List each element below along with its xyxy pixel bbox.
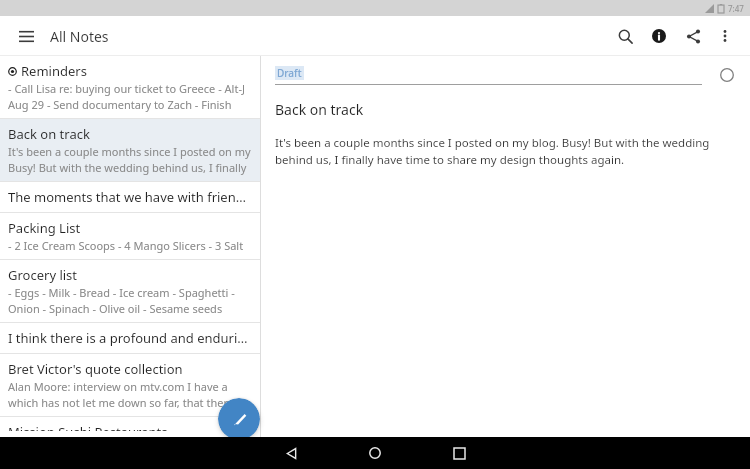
button[interactable]: Create new note	[218, 398, 260, 440]
button[interactable]: Mission Sushi Restaurants	[0, 417, 260, 437]
staticText: Onion - Spinach - Olive oil - Sesame see…	[8, 301, 223, 316]
staticText: Mission Sushi Restaurants	[8, 423, 168, 431]
staticText: - 2 Ice Cream Scoops - 4 Mango Slicers -…	[8, 238, 252, 253]
staticText: Alan Moore: interview on mtv.com I have …	[8, 379, 252, 394]
staticText: Back on track	[8, 125, 90, 143]
button[interactable]: Info	[642, 19, 676, 53]
button[interactable]: I think there is a profound and enduring…	[0, 323, 260, 353]
button[interactable]: Reminders	[0, 56, 260, 118]
staticText: - Call Lisa re: buying our ticket to Gre…	[8, 81, 252, 96]
button[interactable]: Packing List	[0, 213, 260, 259]
button[interactable]: Draft	[275, 66, 304, 80]
button[interactable]: Open navigation drawer	[10, 20, 42, 52]
staticText: Back on track	[275, 100, 364, 119]
staticText: I think there is a profound and enduring…	[8, 329, 252, 347]
staticText: Bret Victor's quote collection	[8, 360, 183, 378]
button[interactable]: Recent apps	[436, 437, 482, 469]
button[interactable]: Mark note	[716, 64, 738, 86]
button[interactable]: More options	[710, 21, 740, 51]
button[interactable]: Back on track	[0, 119, 260, 181]
button[interactable]: Grocery list	[0, 260, 260, 322]
staticText: All Notes	[50, 27, 109, 46]
staticText: It's been a couple months since I posted…	[8, 144, 252, 159]
button[interactable]: Bret Victor's quote collection	[0, 354, 260, 416]
button[interactable]: Back	[268, 437, 314, 469]
staticText: The moments that we have with friends an…	[8, 188, 252, 206]
button[interactable]: Home	[352, 437, 398, 469]
button[interactable]: Search	[608, 19, 642, 53]
staticText: - Eggs - Milk - Bread - Ice cream - Spag…	[8, 285, 252, 300]
staticText: Reminders	[21, 62, 87, 80]
staticText: Draft	[277, 66, 302, 80]
staticText: Busy! But with the wedding behind us, I …	[8, 160, 252, 175]
button[interactable]: Share	[676, 19, 710, 53]
button[interactable]: The moments that we have with friends an…	[0, 182, 260, 212]
staticText: Packing List	[8, 219, 81, 237]
staticText: which has not let me down so far, that t…	[8, 395, 252, 410]
staticText: It's been a couple months since I posted…	[275, 135, 738, 168]
staticText: Aug 29 - Send documentary to Zach - Fini…	[8, 97, 252, 112]
staticText: 7:47	[728, 3, 744, 14]
staticText: Grocery list	[8, 266, 78, 284]
